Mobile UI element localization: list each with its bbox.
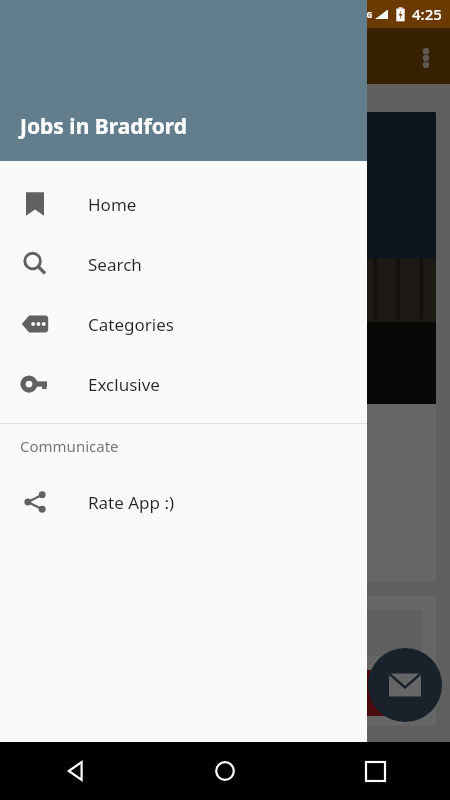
staticText: 3G: [362, 9, 373, 20]
button[interactable]: Rate App :): [0, 472, 367, 532]
button[interactable]: Send email: [368, 648, 442, 722]
staticText: Home: [88, 193, 137, 216]
button[interactable]: Recent apps: [300, 742, 450, 800]
button[interactable]: SEARCH: [32, 670, 422, 716]
button[interactable]: Home: [150, 742, 300, 800]
button[interactable]: Search: [0, 234, 367, 294]
staticText: Categories: [88, 313, 174, 336]
button[interactable]: Search by Name: [18, 596, 436, 726]
staticText: Exclusive: [88, 373, 160, 396]
staticText: Welcome, please use our app to find the …: [36, 467, 235, 536]
staticText: Rate App :): [88, 491, 175, 514]
staticText: Jobs in Bradford: [20, 112, 188, 141]
button[interactable]: Back: [0, 742, 150, 800]
button[interactable]: Home: [0, 174, 367, 234]
staticText: 4:25: [412, 4, 442, 24]
button[interactable]: Categories: [0, 294, 367, 354]
staticText: Search: [88, 253, 142, 276]
button[interactable]: More options: [412, 44, 440, 72]
staticText: Jobs in Bradford: [36, 418, 233, 453]
button[interactable]: Exclusive: [0, 354, 367, 414]
button[interactable]: Jobs in Bradford: [18, 112, 436, 582]
staticText: Communicate: [20, 436, 119, 456]
